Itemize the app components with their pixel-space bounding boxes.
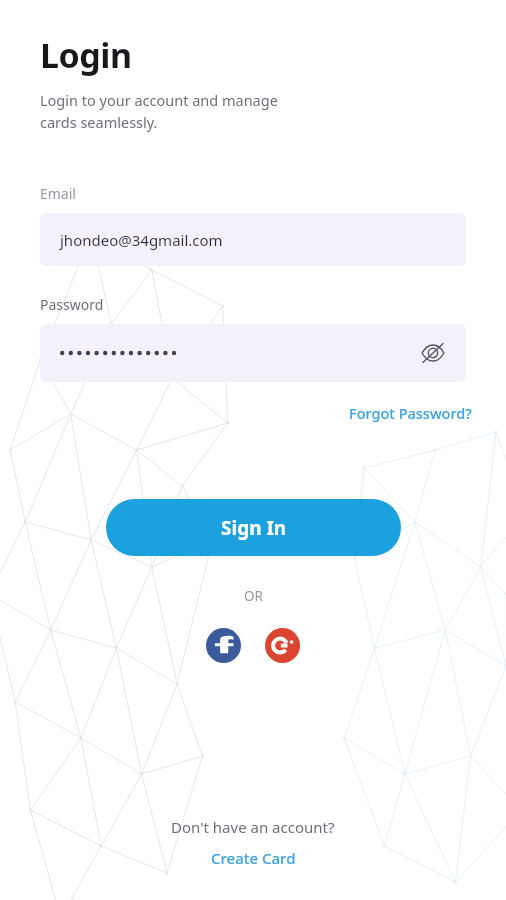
button[interactable]: Create Card bbox=[205, 846, 302, 870]
button[interactable]: Show password bbox=[40, 324, 466, 382]
staticText: Login to your account and manage cards s… bbox=[40, 90, 278, 132]
staticText: OR bbox=[244, 587, 263, 605]
button[interactable]: Sign in with Facebook bbox=[206, 628, 241, 663]
staticText: Email bbox=[40, 184, 76, 203]
staticText: Forgot Password? bbox=[349, 403, 472, 423]
staticText: Password bbox=[40, 295, 104, 314]
button[interactable]: Forgot Password? bbox=[349, 403, 472, 423]
staticText: Create Card bbox=[211, 848, 296, 868]
button[interactable]: Show password bbox=[418, 338, 448, 368]
staticText: Login bbox=[40, 32, 132, 78]
button[interactable]: Sign In bbox=[106, 499, 401, 556]
button[interactable]: jhondeo@34gmail.com bbox=[40, 213, 466, 266]
staticText: jhondeo@34gmail.com bbox=[60, 230, 223, 250]
button[interactable]: Sign in with Google bbox=[265, 628, 300, 663]
staticText: Don't have an account? bbox=[171, 817, 335, 837]
staticText: Sign In bbox=[221, 515, 287, 541]
